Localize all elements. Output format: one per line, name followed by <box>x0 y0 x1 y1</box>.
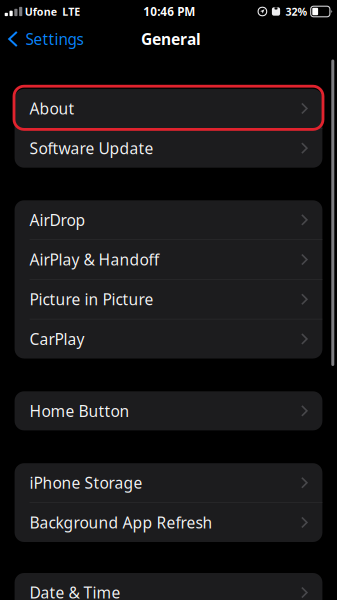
staticText: Background App Refresh <box>30 512 213 533</box>
staticText: Picture in Picture <box>30 289 154 310</box>
staticText: iPhone Storage <box>30 472 143 493</box>
button[interactable]: iPhone Storage <box>15 463 322 502</box>
button[interactable]: CarPlay <box>15 319 322 358</box>
button[interactable]: About <box>15 89 322 128</box>
staticText: 10:46 PM <box>143 3 195 19</box>
button[interactable]: Background App Refresh <box>15 503 322 542</box>
button[interactable]: AirDrop <box>15 200 322 239</box>
staticText: Settings <box>25 29 83 49</box>
button[interactable]: Picture in Picture <box>15 280 322 319</box>
staticText: Date & Time <box>30 582 121 600</box>
button[interactable]: Settings <box>0 25 91 53</box>
button[interactable]: Software Update <box>15 129 322 168</box>
button[interactable]: Date & Time <box>15 573 322 600</box>
staticText: Software Update <box>30 137 154 159</box>
staticText: AirDrop <box>30 209 86 230</box>
staticText: CarPlay <box>30 328 85 349</box>
staticText: General <box>141 28 201 50</box>
staticText: 32% <box>285 4 307 19</box>
staticText: LTE <box>62 4 80 19</box>
button[interactable]: Home Button <box>15 391 322 430</box>
staticText: AirPlay & Handoff <box>30 249 160 270</box>
button[interactable]: AirPlay & Handoff <box>15 240 322 279</box>
staticText: About <box>30 98 75 119</box>
staticText: Ufone <box>25 4 57 19</box>
staticText: Home Button <box>30 400 130 421</box>
